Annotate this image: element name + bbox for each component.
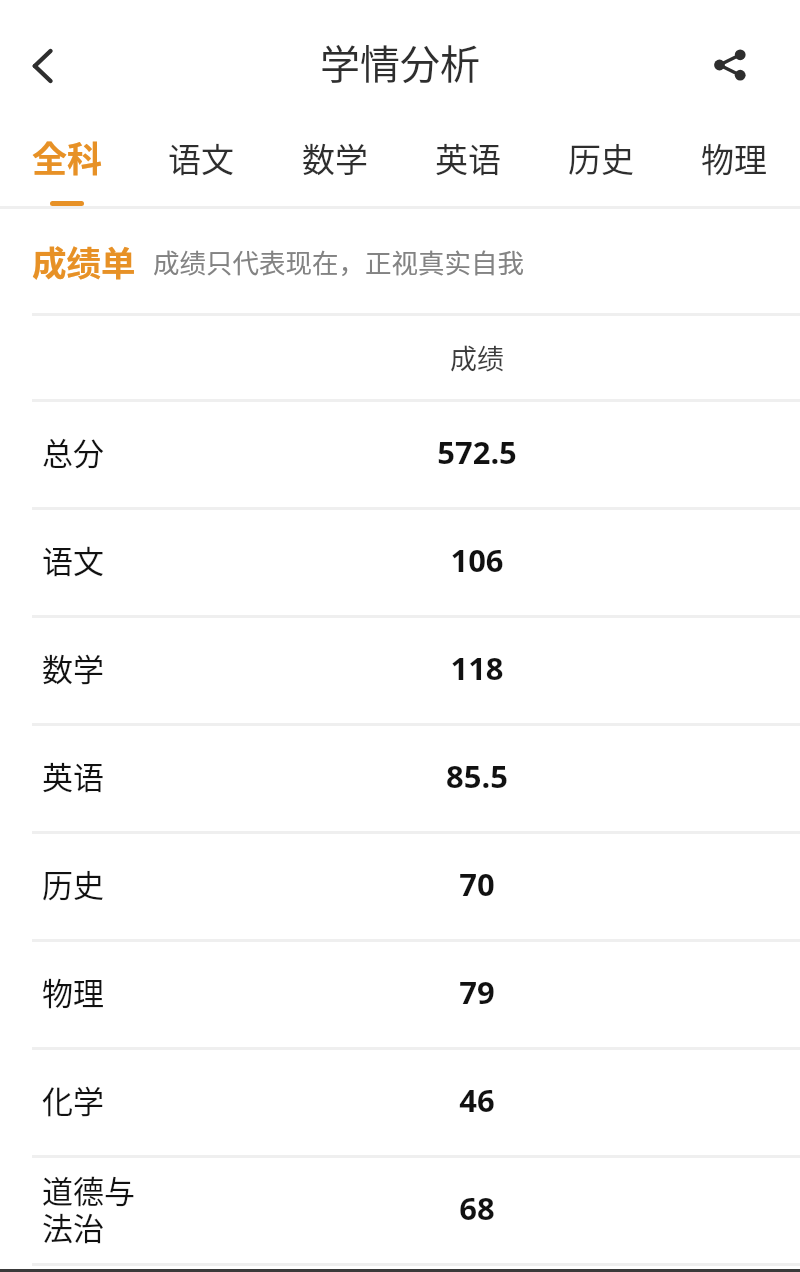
staticText: 成绩只代表现在，正视真实自我	[153, 242, 524, 280]
staticText: 物理	[42, 969, 104, 1014]
staticText: 118	[450, 647, 504, 689]
staticText: 英语	[42, 753, 104, 798]
button[interactable]: Share	[706, 41, 754, 89]
staticText: 化学	[42, 1077, 104, 1122]
staticText: 68	[459, 1187, 495, 1229]
button[interactable]: 历史	[534, 110, 667, 206]
staticText: 79	[459, 971, 495, 1013]
staticText: 572.5	[437, 431, 517, 473]
button[interactable]: 化学	[0, 1050, 800, 1155]
staticText: 数学	[302, 134, 368, 182]
staticText: 语文	[42, 537, 104, 582]
staticText: 成绩单	[32, 236, 136, 286]
staticText: 历史	[568, 134, 634, 182]
staticText: 成绩	[450, 338, 504, 377]
staticText: 物理	[701, 134, 767, 182]
button[interactable]: 数学	[268, 110, 401, 206]
button[interactable]: 语文	[0, 510, 800, 615]
staticText: 语文	[168, 134, 234, 182]
staticText: 道德与 法治	[42, 1167, 135, 1249]
staticText: 历史	[42, 861, 104, 906]
button[interactable]: 道德与 法治	[0, 1158, 800, 1263]
button[interactable]: 物理	[667, 110, 800, 206]
button[interactable]: 历史	[0, 834, 800, 939]
button[interactable]: 物理	[0, 942, 800, 1047]
staticText: 全科	[32, 131, 103, 182]
staticText: 46	[459, 1079, 495, 1121]
staticText: 数学	[42, 645, 104, 690]
button[interactable]: 数学	[0, 618, 800, 723]
staticText: 英语	[435, 134, 501, 182]
button[interactable]: 总分	[0, 402, 800, 507]
button[interactable]: 英语	[401, 110, 534, 206]
button[interactable]: 语文	[134, 110, 268, 206]
button[interactable]: 英语	[0, 726, 800, 831]
button[interactable]: Back	[15, 38, 71, 94]
staticText: 总分	[42, 429, 104, 474]
button[interactable]: 全科	[0, 110, 134, 206]
staticText: 85.5	[446, 755, 508, 797]
staticText: 70	[459, 863, 495, 905]
staticText: 106	[450, 539, 504, 581]
staticText: 学情分析	[320, 33, 480, 91]
